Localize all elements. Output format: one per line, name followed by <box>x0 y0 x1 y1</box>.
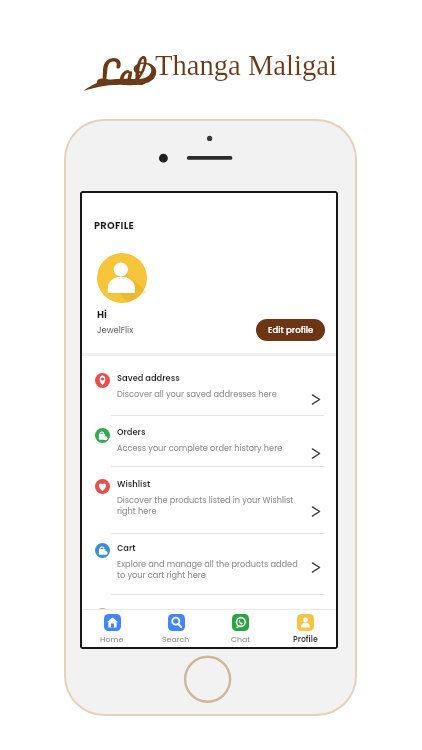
button[interactable]: Saved address <box>80 357 338 411</box>
button[interactable]: Home <box>80 610 144 646</box>
staticText: Cart <box>117 542 136 554</box>
staticText: Edit profile <box>268 324 314 336</box>
staticText: Thanga Maligai <box>155 50 337 82</box>
button[interactable]: Cart <box>80 529 338 595</box>
staticText: right here <box>117 505 157 516</box>
staticText: Explore and manage all the products adde… <box>117 558 298 569</box>
staticText: Orders <box>117 426 146 438</box>
staticText: to your cart right here <box>117 569 206 580</box>
staticText: Profile <box>293 634 318 645</box>
staticText: Saved address <box>117 372 180 384</box>
button[interactable]: Orders <box>80 411 338 465</box>
staticText: Lal <box>98 45 145 99</box>
staticText: Hi <box>97 308 107 322</box>
staticText: Search <box>162 634 190 645</box>
button[interactable]: Edit profile <box>256 319 325 341</box>
staticText: Wishlist <box>117 478 151 490</box>
staticText: Check out all the available coupons here <box>117 622 285 633</box>
other: Profile <box>297 614 314 631</box>
button[interactable]: Chat <box>208 610 273 646</box>
staticText: Discover the products listed in your Wis… <box>117 494 294 505</box>
staticText: Access your complete order history here <box>117 442 283 453</box>
button[interactable]: Search <box>144 610 208 646</box>
staticText: Chat <box>231 634 251 645</box>
button[interactable]: Wishlist <box>80 462 338 528</box>
staticText: Discover all your saved addresses here <box>117 388 277 399</box>
staticText: PROFILE <box>94 219 135 233</box>
staticText: JewelFlix <box>97 324 134 336</box>
staticText: Home <box>100 634 124 645</box>
staticText: Coupons <box>117 606 156 618</box>
button[interactable]: Coupons <box>80 595 338 649</box>
other: Search <box>168 614 185 631</box>
button[interactable]: Profile <box>273 610 338 646</box>
other: Chat <box>232 614 249 631</box>
other: Home <box>104 614 121 631</box>
